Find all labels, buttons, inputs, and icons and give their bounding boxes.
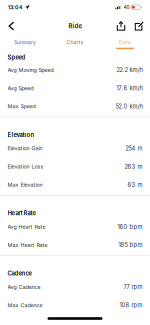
- staticText: Heart Rate: [7, 210, 35, 217]
- staticText: Elevation Gain: [7, 145, 42, 152]
- button[interactable]: Summary: [0, 38, 50, 50]
- staticText: 40: [123, 4, 129, 10]
- staticText: Avg Moving Speed: [7, 67, 53, 73]
- staticText: Ride: [68, 22, 81, 30]
- button[interactable]: Charts: [50, 38, 100, 50]
- staticText: Data: [119, 39, 131, 45]
- button[interactable]: Back: [3, 17, 19, 34]
- staticText: Max Heart Rate: [7, 242, 47, 248]
- staticText: 52.0 km/h: [115, 103, 142, 110]
- staticText: Avg Speed: [7, 85, 33, 91]
- staticText: Max Speed: [7, 103, 35, 110]
- staticText: 77 rpm: [123, 283, 142, 290]
- staticText: Max Elevation: [7, 182, 42, 188]
- staticText: 263 m: [124, 163, 142, 170]
- staticText: Avg Heart Rate: [7, 224, 45, 230]
- button[interactable]: Share: [113, 17, 128, 34]
- staticText: Cadence: [7, 270, 31, 277]
- staticText: 185 bpm: [118, 241, 142, 248]
- staticText: 254 m: [125, 145, 142, 152]
- staticText: Max Cadence: [7, 302, 42, 308]
- staticText: 160 bpm: [117, 223, 142, 230]
- staticText: 17.6 km/h: [116, 85, 142, 92]
- staticText: Speed: [7, 54, 25, 61]
- staticText: Elevation Loss: [7, 163, 43, 170]
- staticText: Charts: [66, 39, 83, 45]
- staticText: Elevation: [7, 131, 34, 138]
- staticText: Avg Cadence: [7, 284, 40, 290]
- staticText: 63 m: [127, 181, 142, 188]
- button[interactable]: Edit: [131, 17, 146, 34]
- staticText: 13:04: [8, 4, 23, 10]
- button[interactable]: Data: [100, 38, 150, 50]
- staticText: Summary: [14, 39, 36, 45]
- staticText: 22.2 km/h: [116, 66, 142, 73]
- staticText: 108 rpm: [119, 302, 142, 309]
